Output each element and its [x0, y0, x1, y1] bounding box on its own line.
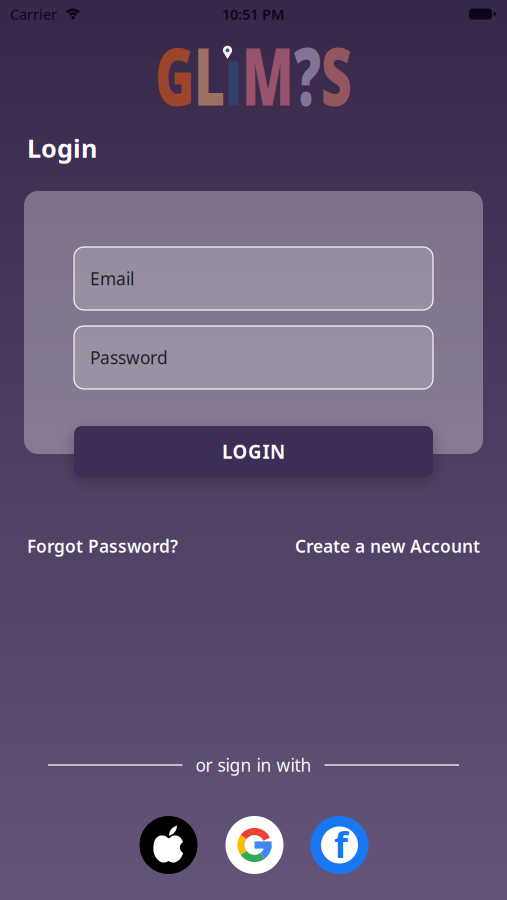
staticText: 10:51 PM	[222, 4, 285, 24]
staticText: Carrier	[10, 4, 57, 24]
button[interactable]: Forgot Password?	[27, 534, 178, 557]
staticText: S	[321, 39, 352, 110]
staticText: G	[155, 39, 194, 110]
staticText: L	[194, 39, 225, 110]
staticText: Email	[90, 267, 134, 290]
button[interactable]: Sign in with Facebook	[310, 816, 368, 874]
staticText: f	[334, 820, 348, 868]
staticText: Login	[27, 131, 97, 165]
staticText: Password	[90, 346, 168, 369]
button[interactable]: Password	[74, 326, 433, 389]
staticText: Create a new Account	[295, 534, 480, 557]
staticText: LOGIN	[222, 439, 285, 464]
button[interactable]: Create a new Account	[295, 534, 480, 557]
button[interactable]: Sign in with Apple	[138, 815, 198, 875]
staticText: or sign in with	[195, 753, 311, 776]
button[interactable]: Email	[74, 247, 433, 310]
button[interactable]: Sign in with Google	[224, 815, 284, 875]
button[interactable]: LOGIN	[24, 426, 483, 477]
staticText: Forgot Password?	[27, 534, 178, 557]
staticText: ı	[225, 39, 242, 110]
staticText: M	[242, 39, 294, 110]
staticText: ?	[294, 39, 321, 110]
